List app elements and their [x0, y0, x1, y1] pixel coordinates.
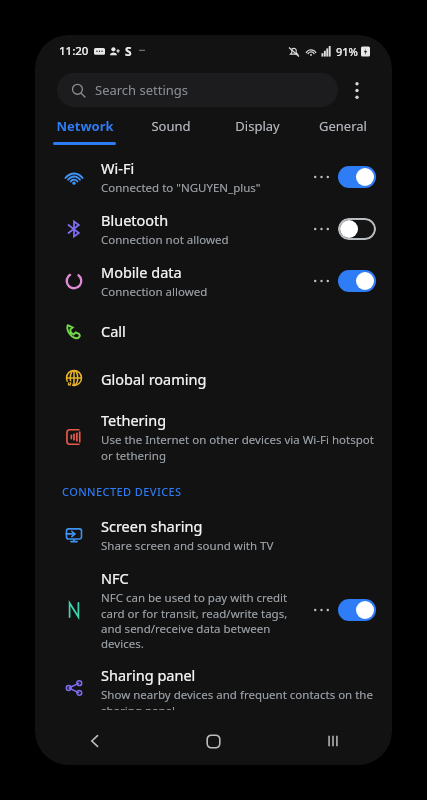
button[interactable]: Wi-Fi options — [310, 163, 332, 191]
button[interactable]: Search settings — [57, 73, 338, 107]
button[interactable]: Sound — [128, 117, 214, 145]
staticText: Display — [235, 117, 280, 135]
staticText: Global roaming — [101, 369, 207, 389]
staticText: Mobile data — [101, 262, 182, 282]
staticText: Bluetooth — [101, 210, 169, 230]
button[interactable]: Wi-Fi switch — [338, 166, 376, 188]
button[interactable]: Recents — [273, 717, 392, 765]
staticText: Sound — [151, 117, 191, 135]
staticText: Show nearby devices and frequent contact… — [101, 687, 376, 710]
staticText: Sharing panel — [101, 665, 196, 685]
button[interactable]: Bluetooth — [35, 203, 392, 255]
button[interactable]: NFC options — [310, 596, 332, 624]
staticText: Use the Internet on other devices via Wi… — [101, 432, 376, 463]
staticText: Connection allowed — [101, 284, 208, 300]
button[interactable]: Screen sharing — [35, 509, 392, 561]
button[interactable]: Bluetooth switch — [338, 218, 376, 240]
staticText: 11:20 — [59, 43, 89, 59]
staticText: NFC can be used to pay with credit card … — [101, 590, 301, 651]
button[interactable]: Wi-Fi — [35, 151, 392, 203]
staticText: Network — [56, 117, 114, 135]
staticText: Connection not allowed — [101, 232, 229, 248]
staticText: Tethering — [101, 410, 167, 430]
button[interactable]: Global roaming — [35, 355, 392, 403]
button[interactable]: Bluetooth options — [310, 215, 332, 243]
staticText: Connected to "NGUYEN_plus" — [101, 180, 261, 196]
staticText: 91% — [336, 44, 358, 59]
button[interactable]: Tethering — [35, 403, 392, 470]
staticText: Screen sharing — [101, 516, 203, 536]
staticText: CONNECTED DEVICES — [62, 484, 182, 499]
button[interactable]: Mobile data options — [310, 267, 332, 295]
button[interactable]: Display — [214, 117, 300, 145]
button[interactable]: Network — [41, 117, 128, 145]
staticText: Call — [101, 321, 126, 341]
button[interactable]: Back — [35, 717, 154, 765]
button[interactable]: More options — [338, 71, 376, 109]
button[interactable]: General — [300, 117, 386, 145]
button[interactable]: Mobile data — [35, 255, 392, 307]
staticText: Search settings — [95, 81, 189, 99]
button[interactable]: Sharing panel — [35, 658, 392, 717]
button[interactable]: NFC switch — [338, 599, 376, 621]
staticText: General — [319, 117, 367, 135]
button[interactable]: Mobile data switch — [338, 270, 376, 292]
staticText: NFC — [101, 568, 129, 588]
button[interactable]: Call — [35, 307, 392, 355]
button[interactable]: NFC — [35, 561, 392, 658]
staticText: Wi-Fi — [101, 158, 135, 178]
staticText: Share screen and sound with TV — [101, 538, 274, 554]
staticText: S — [125, 43, 132, 59]
button[interactable]: Home — [154, 717, 273, 765]
